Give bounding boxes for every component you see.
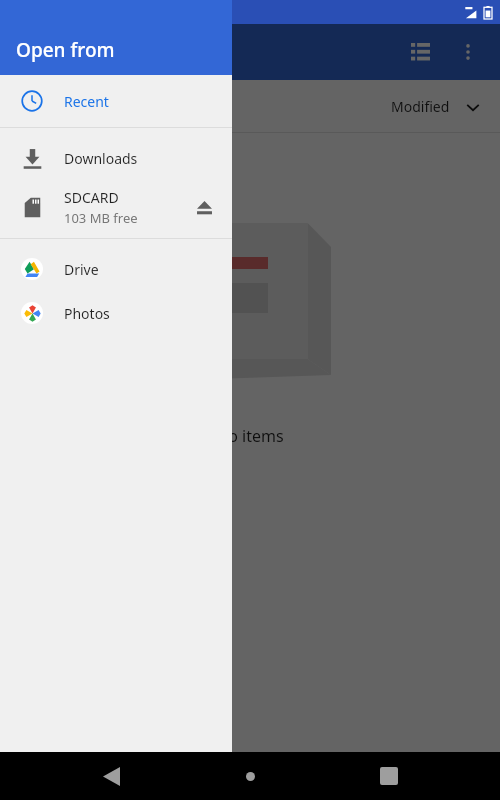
button[interactable]: Downloads xyxy=(0,135,232,182)
staticText: SDCARD xyxy=(64,188,119,207)
button[interactable]: Home xyxy=(222,752,278,800)
staticText: Recent xyxy=(64,92,109,111)
button[interactable]: Recent apps xyxy=(361,752,417,800)
button[interactable]: Eject SDCARD xyxy=(182,185,226,229)
staticText: Downloads xyxy=(64,149,138,168)
button[interactable]: Modified xyxy=(383,91,490,122)
button[interactable]: Back xyxy=(83,752,139,800)
button[interactable] xyxy=(0,0,500,752)
staticText: Open from xyxy=(16,37,115,63)
button[interactable]: Drive xyxy=(0,247,232,291)
button[interactable]: List view xyxy=(396,28,444,76)
button[interactable]: More options xyxy=(444,28,492,76)
button[interactable]: SDCARD xyxy=(0,182,232,232)
staticText: No items xyxy=(216,425,284,447)
staticText: 103 MB free xyxy=(64,209,138,227)
staticText: Modified xyxy=(391,97,450,116)
staticText: Photos xyxy=(64,304,110,323)
button[interactable]: Photos xyxy=(0,291,232,335)
staticText: Drive xyxy=(64,260,99,279)
button[interactable]: Recent xyxy=(0,75,232,127)
